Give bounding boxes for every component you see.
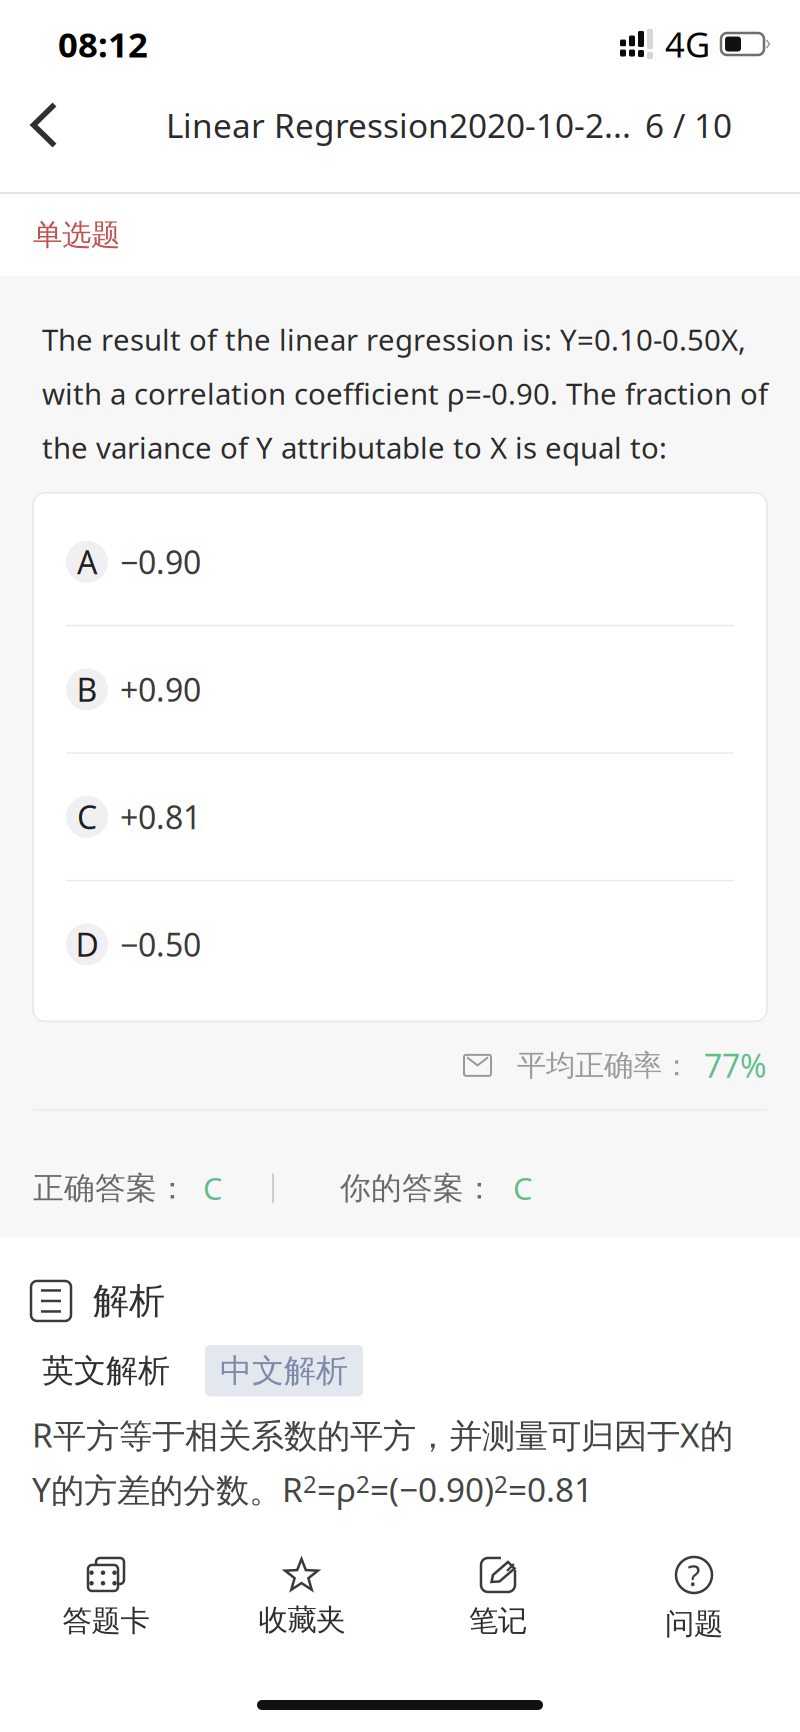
staticText: B xyxy=(76,668,97,711)
button[interactable]: Back xyxy=(0,86,94,164)
staticText: 收藏夹 xyxy=(258,1602,345,1638)
staticText: 你的答案： xyxy=(340,1169,495,1207)
button[interactable]: 收藏夹 xyxy=(204,1554,400,1642)
staticText: −0.50 xyxy=(120,923,201,966)
staticText: 中文解析 xyxy=(220,1351,348,1390)
button[interactable]: B xyxy=(33,626,767,752)
button[interactable]: 笔记 xyxy=(400,1553,596,1643)
staticText: 77% xyxy=(704,1044,767,1087)
staticText: 笔记 xyxy=(469,1603,527,1639)
button[interactable]: ? xyxy=(596,1550,792,1646)
staticText: +0.81 xyxy=(120,796,201,838)
staticText: 6 / 10 xyxy=(645,103,732,147)
staticText: 单选题 xyxy=(33,217,120,253)
staticText: D xyxy=(75,923,98,966)
staticText: −0.90 xyxy=(120,541,201,583)
button[interactable]: A xyxy=(33,499,767,625)
staticText: ? xyxy=(687,1555,700,1594)
staticText: C xyxy=(203,1168,222,1209)
staticText: R平方等于相关系数的平方，并测量可归因于X的Y的方差的分数。R2=ρ2=(−0.… xyxy=(32,1412,733,1511)
staticText: 平均正确率： xyxy=(517,1047,691,1083)
button[interactable]: 答题卡 xyxy=(8,1553,204,1643)
staticText: C xyxy=(77,796,97,838)
button[interactable]: C xyxy=(33,754,767,880)
staticText: 正确答案： xyxy=(33,1169,188,1207)
staticText: +0.90 xyxy=(120,668,201,711)
staticText: C xyxy=(513,1168,532,1209)
staticText: 08:12 xyxy=(58,21,148,67)
button[interactable]: D xyxy=(33,881,767,1007)
staticText: Linear Regression2020-10-2... xyxy=(166,103,631,147)
button[interactable]: 中文解析 xyxy=(205,1345,363,1396)
staticText: 4G xyxy=(665,21,710,67)
button[interactable]: 英文解析 xyxy=(31,1339,181,1402)
staticText: 英文解析 xyxy=(42,1351,170,1390)
staticText: A xyxy=(77,541,97,583)
staticText: 解析 xyxy=(93,1279,165,1323)
staticText: 答题卡 xyxy=(62,1603,149,1639)
staticText: 问题 xyxy=(665,1606,723,1642)
staticText: The result of the linear regression is: … xyxy=(42,320,768,467)
